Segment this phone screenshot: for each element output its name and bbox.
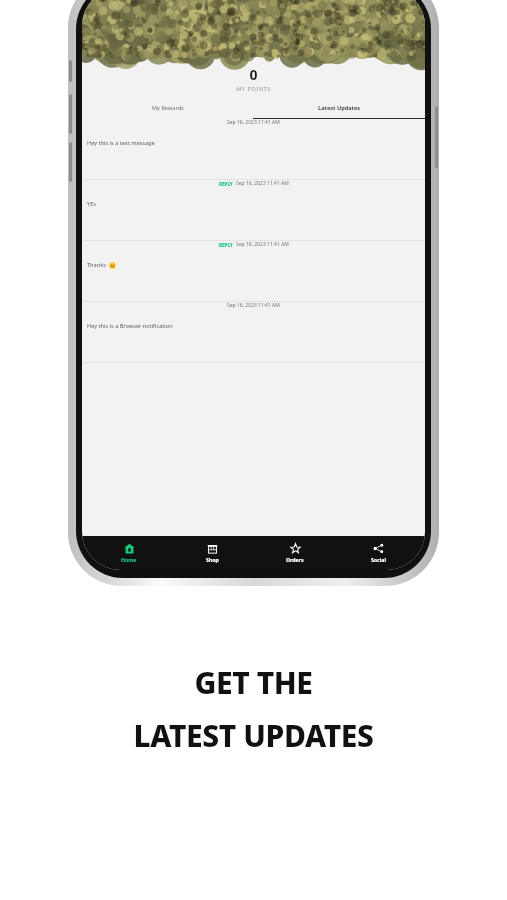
button[interactable]: My Rewards xyxy=(82,104,253,119)
staticText: YEs xyxy=(87,200,96,208)
button[interactable]: Home xyxy=(93,536,165,570)
staticText: Latest Updates xyxy=(318,104,361,112)
staticText: LATEST UPDATES xyxy=(0,715,507,756)
button[interactable]: Sep 16, 2023 11:41 AM xyxy=(82,119,425,180)
staticText: Sep 16, 2023 11:41 AM xyxy=(227,302,280,309)
button[interactable]: Sep 16, 2023 11:41 AM xyxy=(82,302,425,363)
button[interactable]: Shop xyxy=(176,536,248,570)
staticText: 0 xyxy=(82,65,425,84)
staticText: Shop xyxy=(206,556,219,563)
button[interactable]: REPLY xyxy=(82,180,425,241)
button[interactable]: REPLY xyxy=(82,241,425,302)
staticText: Orders xyxy=(286,556,304,563)
staticText: MY POINTS xyxy=(82,85,425,93)
button[interactable]: Social xyxy=(342,536,414,570)
staticText: Thanks xyxy=(87,261,106,269)
staticText: Sep 16, 2023 11:41 AM xyxy=(227,119,280,126)
staticText: Sep 16, 2023 11:41 AM xyxy=(236,241,289,248)
staticText: REPLY xyxy=(219,181,233,187)
staticText: REPLY xyxy=(219,242,233,248)
staticText: Sep 16, 2023 11:41 AM xyxy=(236,180,289,187)
staticText: Home xyxy=(121,556,137,563)
staticText: Social xyxy=(371,556,386,563)
staticText: Hey this is a Browser notification xyxy=(87,322,173,330)
staticText: GET THE xyxy=(0,662,507,703)
button[interactable]: Orders xyxy=(259,536,331,570)
staticText: Hey this is a text message xyxy=(87,139,155,147)
button[interactable]: Latest Updates xyxy=(253,104,425,119)
staticText: My Rewards xyxy=(152,104,184,112)
